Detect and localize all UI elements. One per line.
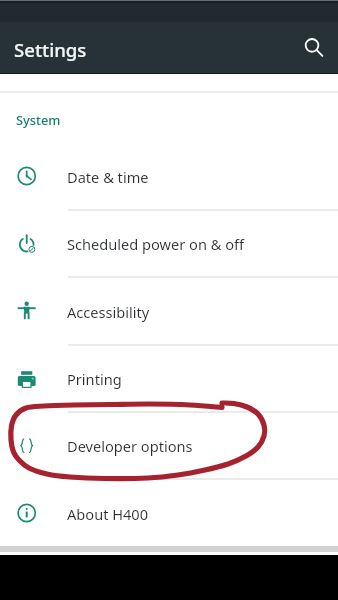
button[interactable]: Developer options	[0, 411, 338, 478]
button[interactable]: Scheduled power on & off	[0, 209, 338, 276]
staticText: Accessibility	[67, 302, 150, 322]
button[interactable]: Date & time	[0, 142, 338, 209]
staticText: Date & time	[67, 167, 149, 187]
staticText: Developer options	[67, 436, 193, 456]
button[interactable]: Printing	[0, 344, 338, 411]
staticText: Printing	[67, 369, 122, 389]
button[interactable]: Search	[296, 30, 332, 66]
button[interactable]: About H400	[0, 479, 338, 546]
staticText: About H400	[67, 504, 149, 524]
staticText: Scheduled power on & off	[67, 234, 245, 254]
staticText: System	[16, 111, 61, 128]
staticText: Settings	[14, 37, 87, 62]
button[interactable]: Accessibility	[0, 277, 338, 344]
